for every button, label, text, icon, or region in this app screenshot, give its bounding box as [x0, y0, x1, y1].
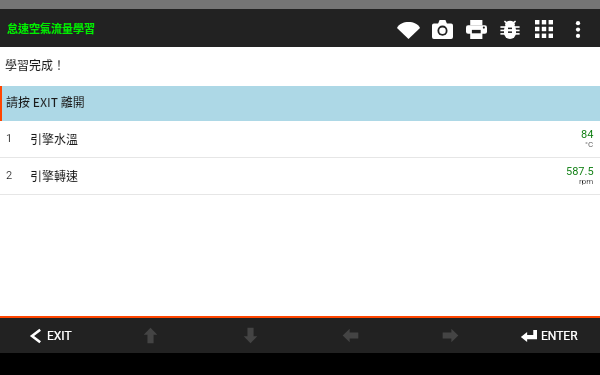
button[interactable]: ENTER — [500, 318, 600, 353]
staticText: 84 — [581, 128, 594, 141]
button[interactable]: EXIT — [0, 318, 100, 353]
button[interactable]: Scroll down — [200, 318, 300, 353]
button[interactable]: Previous — [300, 318, 400, 353]
button[interactable]: 請按 EXIT 離開 — [0, 86, 600, 121]
button[interactable]: Debug — [493, 9, 527, 47]
staticText: °C — [585, 140, 594, 149]
staticText: ENTER — [541, 329, 578, 343]
staticText: 2 — [6, 169, 13, 182]
button[interactable]: Camera — [425, 9, 459, 47]
button[interactable]: Apps — [527, 9, 561, 47]
button[interactable]: Print — [459, 9, 493, 47]
button[interactable]: 2 — [0, 158, 600, 195]
button[interactable]: More options — [561, 9, 595, 47]
staticText: EXIT — [47, 329, 72, 343]
staticText: 587.5 — [566, 165, 594, 178]
button[interactable]: Next — [400, 318, 500, 353]
staticText: 怠速空氣流量學習 — [7, 20, 95, 36]
staticText: 學習完成！ — [5, 56, 66, 73]
staticText: 1 — [6, 132, 13, 145]
button[interactable]: Scroll up — [100, 318, 200, 353]
button[interactable]: 1 — [0, 121, 600, 158]
button[interactable]: Wi-Fi — [391, 9, 425, 47]
staticText: rpm — [579, 177, 594, 186]
staticText: 請按 EXIT 離開 — [6, 93, 85, 110]
staticText: 引擎轉速 — [30, 167, 79, 184]
staticText: 引擎水溫 — [30, 130, 79, 147]
